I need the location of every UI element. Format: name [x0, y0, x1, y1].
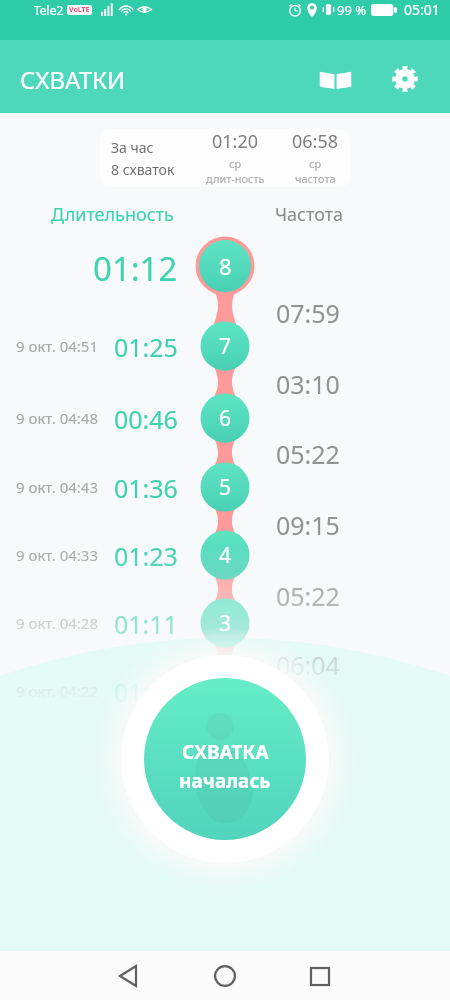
staticText: 8 схваток	[111, 160, 175, 179]
staticText: 01:23	[114, 539, 178, 573]
staticText: 9 окт. 04:33	[16, 545, 98, 565]
button[interactable]: 9 окт. 04:22	[0, 664, 450, 718]
staticText: 7	[219, 332, 232, 361]
staticText: 01:25	[114, 330, 178, 364]
button[interactable]: 9 окт. 04:43	[0, 460, 450, 514]
button[interactable]: 9 окт. 04:28	[0, 596, 450, 650]
button[interactable]: СХВАТКА	[144, 678, 306, 840]
button[interactable]: 9 окт. 04:51	[0, 319, 450, 373]
staticText: 2	[219, 677, 232, 706]
staticText: частота	[295, 171, 336, 186]
button[interactable]: Home	[201, 952, 249, 1000]
staticText: 03:10	[276, 367, 340, 401]
staticText: За час	[111, 138, 154, 157]
staticText: 5	[219, 473, 232, 502]
staticText: 3	[219, 609, 232, 638]
staticText: 8	[219, 251, 232, 281]
staticText: ср	[229, 156, 242, 171]
staticText: VoLTE	[69, 5, 90, 15]
staticText: началась	[179, 768, 271, 794]
staticText: 4	[219, 541, 232, 570]
button[interactable]: 9 окт. 04:48	[0, 391, 450, 445]
staticText: длит-ность	[206, 171, 265, 186]
staticText: Частота	[275, 202, 344, 227]
staticText: 01:20	[212, 129, 259, 154]
staticText: 9 окт. 04:43	[16, 477, 98, 497]
staticText: 01:12	[93, 246, 178, 291]
button[interactable]: Settings	[381, 55, 429, 103]
staticText: 00:46	[114, 402, 178, 436]
staticText: 9 окт. 04:28	[16, 613, 98, 633]
staticText: 05:22	[276, 579, 340, 613]
staticText: 9 окт. 04:51	[16, 336, 98, 356]
staticText: ср	[309, 156, 322, 171]
staticText: 9 окт. 04:48	[16, 408, 98, 428]
button[interactable]: Guide	[311, 55, 359, 103]
staticText: СХВАТКА	[182, 739, 269, 765]
staticText: 05:22	[276, 437, 340, 471]
button[interactable]: Recents	[296, 952, 344, 1000]
staticText: Tele2	[34, 2, 64, 18]
button[interactable]: 01:12	[0, 239, 450, 293]
staticText: 99 %	[337, 1, 367, 19]
button[interactable]: За час	[100, 129, 350, 187]
staticText: 9 окт. 04:22	[16, 681, 98, 701]
staticText: 01:05	[114, 675, 178, 709]
staticText: 6	[219, 404, 232, 433]
staticText: 09:15	[276, 508, 340, 542]
staticText: 05:01	[404, 0, 440, 19]
staticText: 07:59	[276, 296, 340, 330]
staticText: 06:58	[292, 129, 339, 154]
staticText: 01:36	[114, 471, 178, 505]
staticText: СХВАТКИ	[20, 63, 126, 96]
staticText: Длительность	[51, 202, 174, 227]
button[interactable]: Back	[104, 952, 152, 1000]
staticText: 01:11	[114, 607, 178, 641]
button[interactable]: 9 окт. 04:33	[0, 528, 450, 582]
staticText: 06:04	[276, 648, 340, 682]
